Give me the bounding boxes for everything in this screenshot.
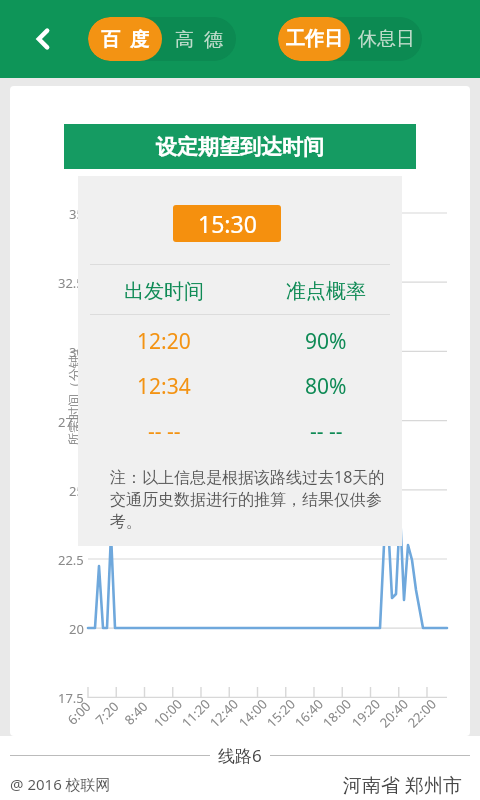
staticText: 高 德	[175, 26, 223, 52]
button[interactable]: 15:30	[173, 205, 281, 242]
button[interactable]: 高 德	[162, 17, 236, 61]
staticText: 7:20	[91, 697, 122, 728]
staticText: 线路6	[218, 744, 262, 767]
staticText: 百 度	[101, 26, 149, 52]
staticText: -- --	[148, 417, 181, 446]
staticText: 22:00	[404, 695, 440, 731]
staticText: 90%	[305, 327, 347, 356]
staticText: 休息日	[358, 27, 415, 51]
staticText: 15:30	[198, 208, 257, 239]
staticText: 所需时间（分钟）	[66, 342, 82, 446]
staticText: 12:20	[137, 327, 191, 356]
button[interactable]: 休息日	[350, 17, 422, 61]
button[interactable]: 百 度	[88, 17, 162, 61]
staticText: 注：以上信息是根据该路线过去18天的交通历史数据进行的推算，结果仅供参考。	[110, 466, 386, 532]
staticText: 35	[69, 205, 84, 223]
staticText: 27.5	[58, 413, 84, 431]
staticText: -- --	[310, 417, 343, 446]
staticText: 11:20	[178, 695, 214, 731]
staticText: 12:34	[137, 372, 191, 401]
staticText: 工作日	[286, 27, 343, 51]
staticText: 20	[69, 620, 84, 638]
staticText: 10:00	[150, 695, 186, 731]
staticText: 6:00	[63, 697, 94, 728]
staticText: 15:20	[263, 695, 299, 731]
staticText: 14:00	[235, 695, 271, 731]
staticText: 18:00	[319, 695, 355, 731]
staticText: 16:40	[291, 695, 327, 731]
button[interactable]: 工作日	[278, 17, 350, 61]
staticText: 25	[69, 482, 84, 500]
staticText: 设定期望到达时间	[156, 134, 324, 160]
staticText: 32.5	[58, 274, 84, 292]
staticText: 80%	[305, 372, 347, 401]
staticText: 河南省 郑州市	[343, 772, 462, 798]
staticText: 30	[69, 343, 84, 361]
staticText: 12:40	[206, 695, 242, 731]
staticText: 准点概率	[286, 279, 366, 304]
staticText: 17.5	[58, 689, 84, 707]
button[interactable]: Back	[18, 14, 68, 64]
staticText: 出发时间	[124, 279, 204, 304]
staticText: 19:20	[348, 695, 384, 731]
staticText: @ 2016 校联网	[10, 774, 111, 794]
staticText: 22.5	[58, 551, 84, 569]
staticText: 8:40	[120, 697, 151, 728]
staticText: 20:40	[376, 695, 412, 731]
